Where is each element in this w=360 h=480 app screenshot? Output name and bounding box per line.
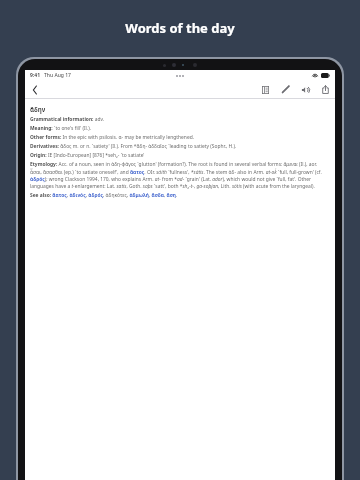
button[interactable]: ἄδην xyxy=(30,105,329,113)
button[interactable]: Annotate xyxy=(279,83,292,96)
button[interactable]: Meaning: `to one's fill' (Il.). xyxy=(30,125,329,132)
button[interactable]: Read aloud xyxy=(299,83,312,96)
staticText: Words of the day xyxy=(0,19,360,37)
button[interactable]: Grammatical information: adv. xyxy=(30,116,329,123)
button[interactable]: Derivatives: ἄδος m. or n. `satiety' (Il… xyxy=(30,143,329,150)
button[interactable]: Back xyxy=(28,83,42,97)
button[interactable]: Table of contents xyxy=(259,83,272,96)
staticText: 9:41 xyxy=(30,72,40,79)
staticText: Thu Aug 17 xyxy=(44,72,71,79)
button[interactable]: See also: ἄατος, ἁδινός, ἁδρός, ἀδηκότες… xyxy=(30,192,329,199)
button[interactable]: Etymology: Acc. of a noun, seen in ἀδη-φ… xyxy=(30,161,329,189)
button[interactable]: Origin: IE [Indo-European] [876] *seh₂- … xyxy=(30,152,329,159)
button[interactable]: Share xyxy=(319,83,332,96)
button[interactable]: Other forms: In the epic with psilosis. … xyxy=(30,134,329,141)
